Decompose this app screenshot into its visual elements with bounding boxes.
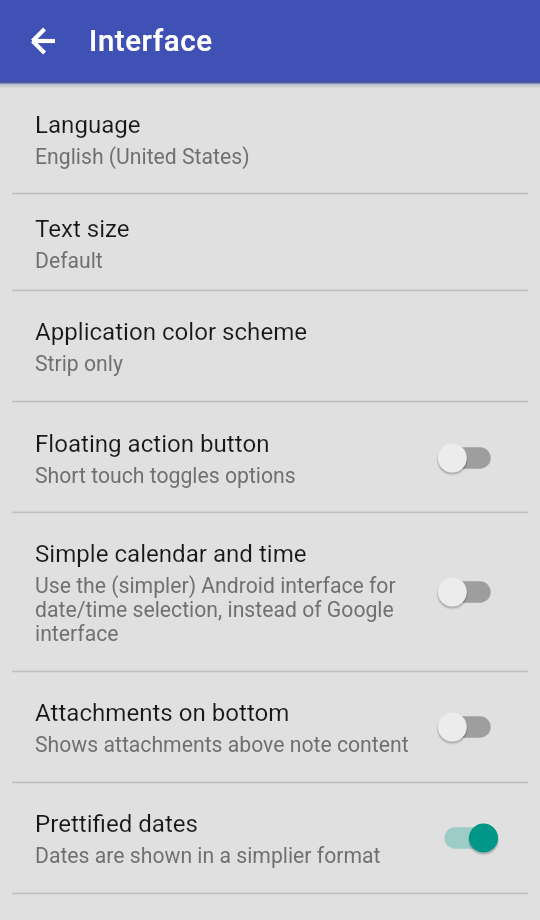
button[interactable]: Back bbox=[16, 15, 68, 67]
button[interactable]: Switch off bbox=[440, 438, 500, 478]
button[interactable]: Attachments on bottom bbox=[0, 671, 540, 782]
staticText: Floating action button bbox=[35, 431, 270, 457]
staticText: Application color scheme bbox=[35, 319, 308, 345]
button[interactable]: Application color scheme bbox=[0, 290, 540, 401]
staticText: Default bbox=[35, 249, 103, 273]
button[interactable]: Floating action button bbox=[0, 402, 540, 513]
button[interactable]: Text size bbox=[0, 194, 540, 291]
staticText: Prettified dates bbox=[35, 811, 199, 837]
button[interactable]: Switch off bbox=[440, 707, 500, 747]
button[interactable]: Language bbox=[0, 83, 540, 194]
staticText: Simple calendar and time bbox=[35, 541, 307, 567]
staticText: Dates are shown in a simplier format bbox=[35, 844, 381, 868]
staticText: Short touch toggles options bbox=[35, 464, 296, 488]
staticText: Shows attachments above note content bbox=[35, 733, 409, 757]
staticText: English (United States) bbox=[35, 145, 250, 169]
staticText: Interface bbox=[89, 24, 213, 58]
staticText: Strip only bbox=[35, 352, 123, 376]
button[interactable]: Switch on bbox=[440, 818, 500, 858]
staticText: Use the (simpler) Android interface for … bbox=[35, 574, 425, 646]
staticText: Attachments on bottom bbox=[35, 700, 290, 726]
staticText: Text size bbox=[35, 216, 130, 242]
staticText: Language bbox=[35, 112, 141, 138]
button[interactable]: Simple calendar and time bbox=[0, 512, 540, 671]
button[interactable]: Switch off bbox=[440, 572, 500, 612]
button[interactable]: Prettified dates bbox=[0, 782, 540, 893]
